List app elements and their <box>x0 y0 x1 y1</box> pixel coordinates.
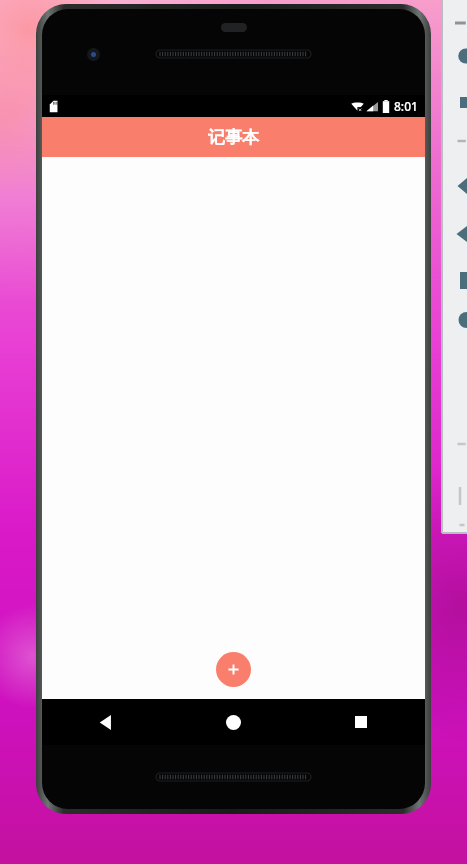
button[interactable]: Home <box>169 699 297 745</box>
staticText: 8:01 <box>394 98 418 114</box>
button[interactable]: Add note <box>216 652 251 687</box>
button[interactable]: Back <box>42 699 169 745</box>
button[interactable]: Recent apps <box>297 699 425 745</box>
staticText: 记事本 <box>208 127 259 148</box>
